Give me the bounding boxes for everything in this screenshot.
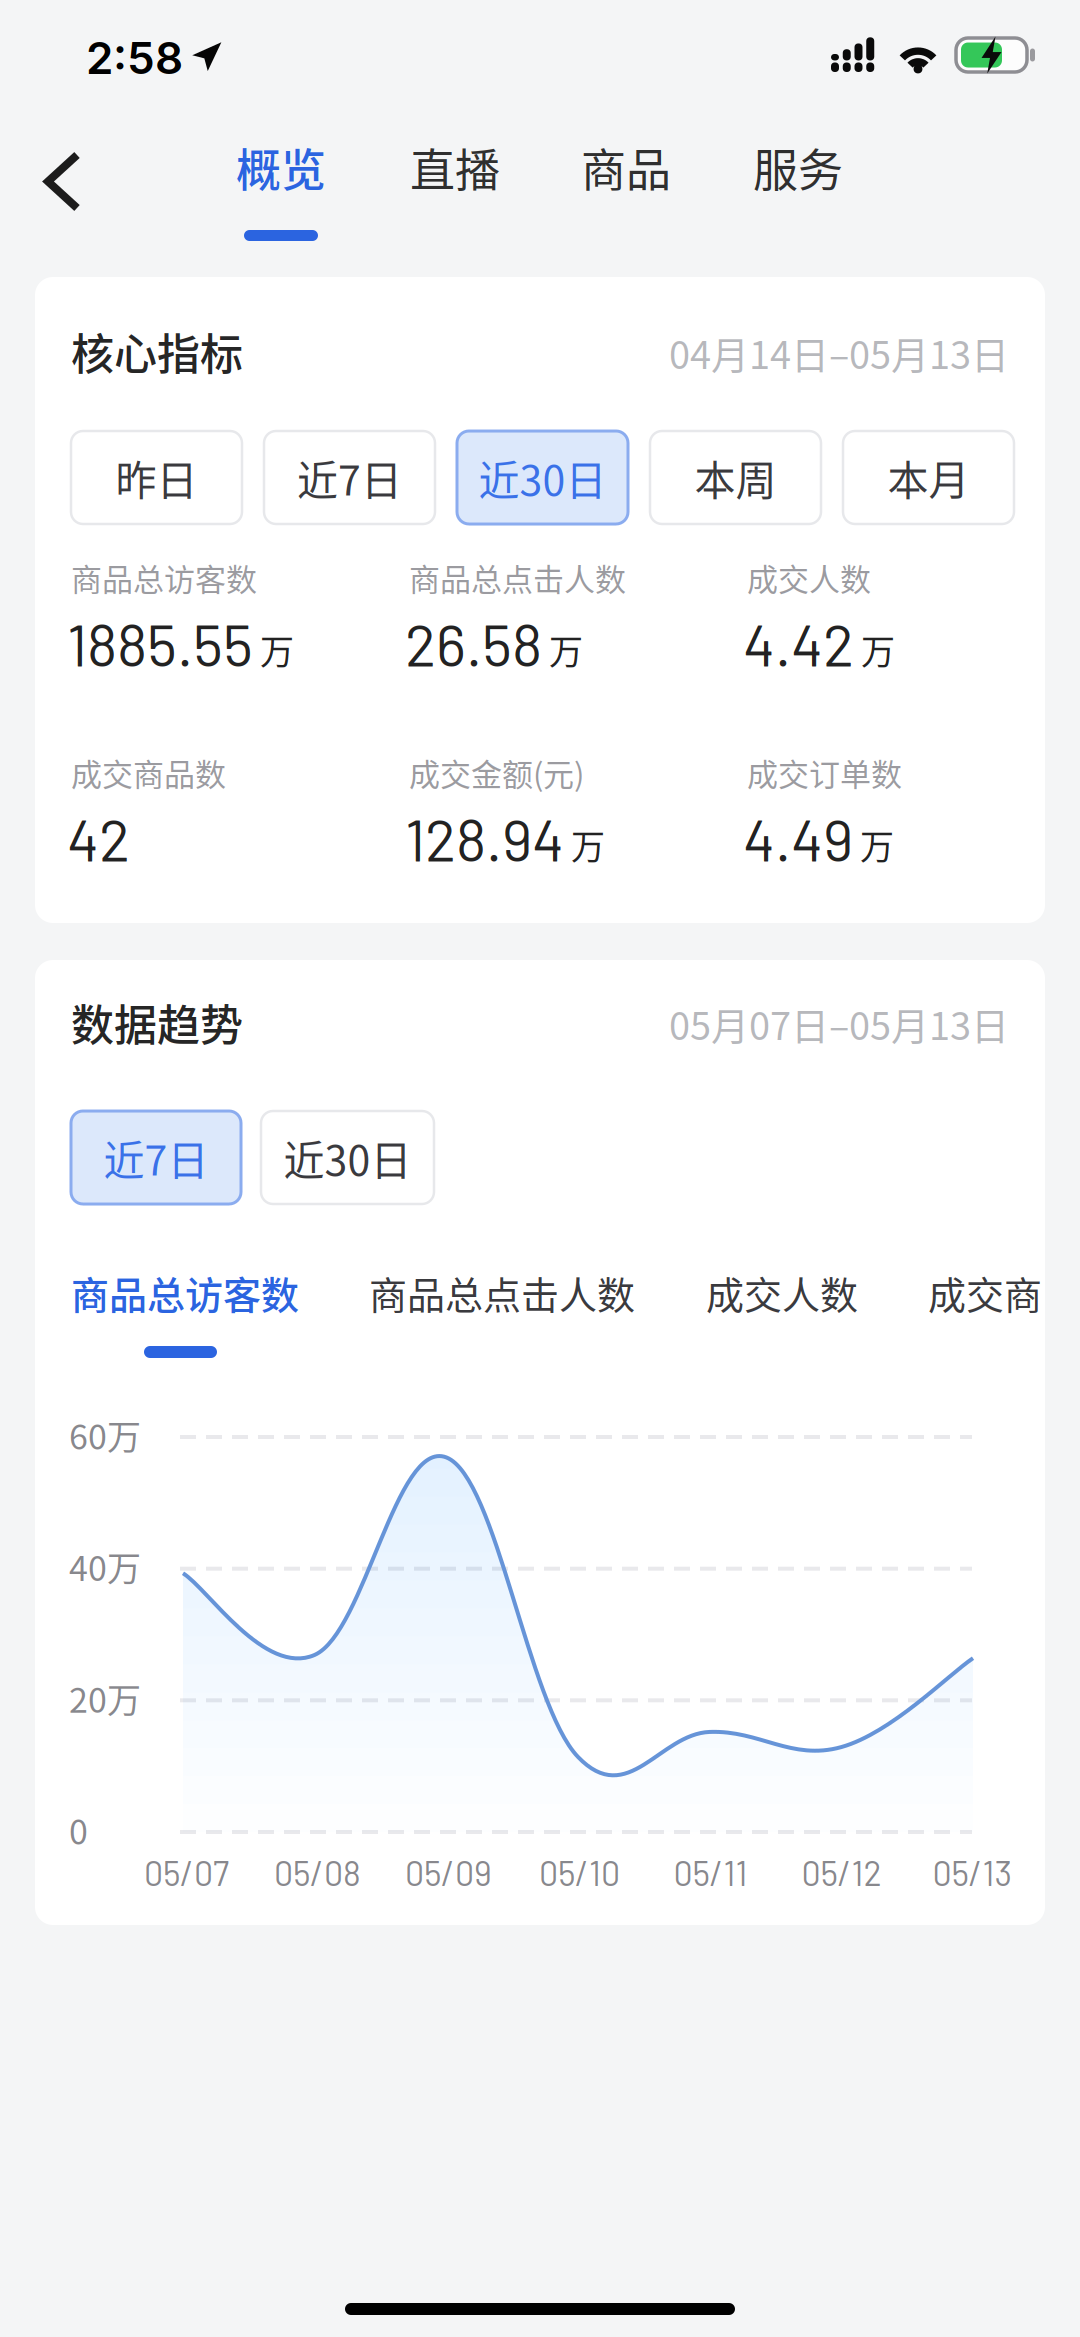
staticText: 近30日: [283, 1128, 411, 1187]
staticText: 近7日: [297, 448, 402, 507]
staticText: 近7日: [103, 1128, 208, 1187]
staticText: 商品总访客数: [71, 1265, 299, 1320]
staticText: 1885.55: [67, 608, 253, 678]
button[interactable]: 成交人数: [706, 1265, 858, 1358]
staticText: 05/08: [274, 1852, 361, 1893]
staticText: 核心指标: [71, 320, 243, 382]
staticText: 成交商: [928, 1265, 1042, 1320]
staticText: 近30日: [478, 448, 606, 507]
button[interactable]: 成交商: [928, 1265, 1048, 1358]
staticText: 40万: [69, 1542, 141, 1591]
staticText: 成交人数: [706, 1265, 858, 1320]
staticText: 万: [861, 625, 895, 674]
staticText: 概览: [236, 135, 326, 200]
staticText: 4.42: [743, 608, 854, 678]
button[interactable]: 商品总点击人数: [369, 1265, 635, 1358]
button[interactable]: 近30日: [261, 1111, 434, 1204]
staticText: 万: [571, 820, 605, 869]
staticText: 本周: [694, 448, 776, 507]
button[interactable]: 近30日: [457, 431, 628, 524]
button[interactable]: 返回: [0, 110, 119, 254]
button[interactable]: 概览: [236, 110, 326, 277]
staticText: 2:58: [86, 31, 183, 85]
button[interactable]: 本周: [650, 431, 821, 524]
button[interactable]: 商品: [581, 110, 671, 277]
staticText: 04月14日–05月13日: [669, 325, 1009, 380]
staticText: 20万: [69, 1673, 141, 1722]
button[interactable]: 本月: [843, 431, 1014, 524]
staticText: 成交人数: [747, 555, 871, 600]
staticText: 商品: [581, 135, 671, 200]
staticText: 商品总访客数: [71, 555, 257, 600]
staticText: 直播: [410, 135, 500, 200]
staticText: 128.94: [405, 803, 564, 873]
staticText: 成交金额(元): [409, 750, 584, 795]
staticText: 成交商品数: [71, 750, 226, 795]
staticText: 昨日: [115, 448, 197, 507]
button[interactable]: 近7日: [71, 1111, 241, 1204]
staticText: 0: [69, 1805, 88, 1854]
button[interactable]: 服务: [753, 110, 843, 277]
staticText: 本月: [887, 448, 969, 507]
staticText: 26.58: [405, 608, 542, 678]
staticText: 60万: [69, 1410, 141, 1459]
staticText: 万: [260, 625, 294, 674]
staticText: 42: [67, 803, 130, 873]
staticText: 05/13: [932, 1852, 1012, 1893]
staticText: 商品总点击人数: [409, 555, 626, 600]
button[interactable]: 直播: [410, 110, 500, 277]
staticText: 05/10: [539, 1852, 620, 1893]
staticText: 05/11: [673, 1852, 747, 1893]
staticText: 05/12: [801, 1852, 881, 1893]
staticText: 成交订单数: [747, 750, 902, 795]
staticText: 万: [860, 820, 894, 869]
staticText: 05/09: [405, 1852, 492, 1893]
button[interactable]: 昨日: [71, 431, 242, 524]
button[interactable]: 近7日: [264, 431, 435, 524]
staticText: 服务: [753, 135, 843, 200]
button[interactable]: 商品总访客数: [71, 1265, 299, 1358]
staticText: 商品总点击人数: [369, 1265, 635, 1320]
staticText: 05/07: [144, 1852, 229, 1893]
staticText: 数据趋势: [71, 991, 243, 1053]
staticText: 4.49: [743, 803, 853, 873]
staticText: 05月07日–05月13日: [669, 996, 1009, 1051]
staticText: 万: [549, 625, 583, 674]
